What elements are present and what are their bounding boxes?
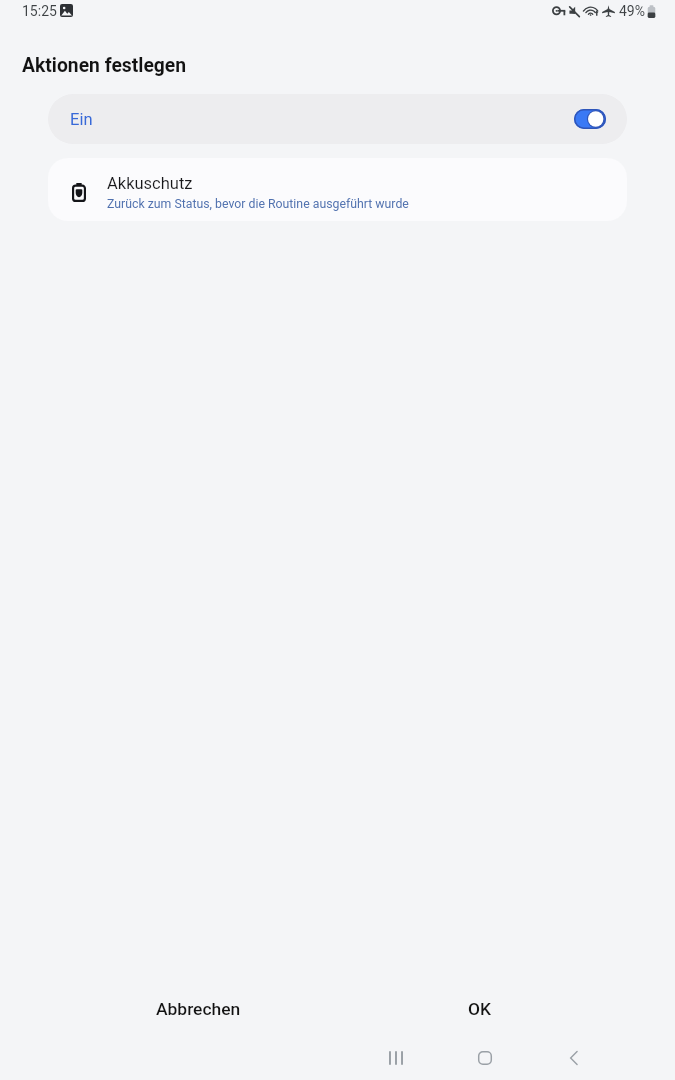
staticText: Aktionen festlegen <box>22 54 187 77</box>
staticText: Abbrechen <box>156 999 241 1019</box>
button[interactable]: Akkuschutz <box>48 158 627 221</box>
button[interactable]: Recent apps <box>374 1036 418 1080</box>
button[interactable]: Abbrechen <box>128 987 268 1031</box>
button[interactable]: Ein/Aus <box>574 109 606 129</box>
button[interactable]: Back <box>552 1036 596 1080</box>
staticText: Akkuschutz <box>107 174 193 193</box>
button[interactable]: Ein <box>48 94 627 144</box>
staticText: OK <box>468 999 491 1019</box>
staticText: 15:25 <box>22 3 57 19</box>
staticText: 49% <box>619 3 645 19</box>
button[interactable]: Home <box>463 1036 507 1080</box>
staticText: Zurück zum Status, bevor die Routine aus… <box>107 197 409 211</box>
button[interactable]: OK <box>409 987 549 1031</box>
staticText: Ein <box>70 110 93 129</box>
